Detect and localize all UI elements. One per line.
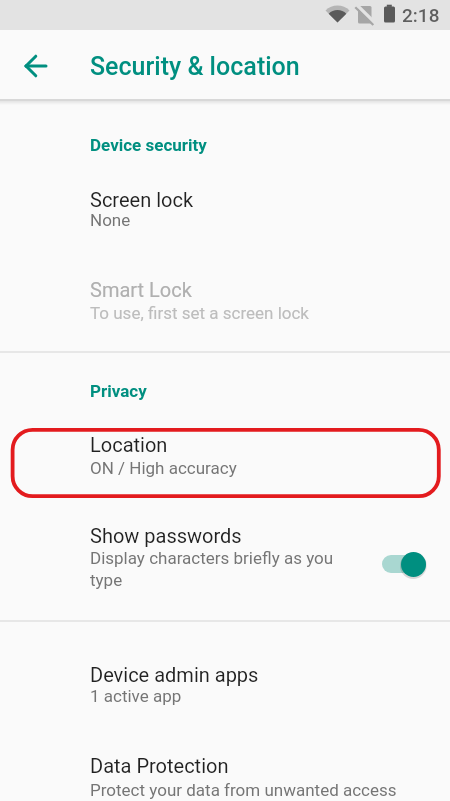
staticText: Protect your data from unwanted access: [90, 780, 397, 800]
button[interactable]: [12, 42, 60, 90]
staticText: To use, first set a screen lock: [90, 303, 309, 323]
button[interactable]: Location: [0, 426, 450, 502]
staticText: Smart Lock: [90, 278, 192, 301]
staticText: Location: [90, 433, 168, 456]
button[interactable]: Device admin apps: [0, 651, 450, 709]
staticText: Show passwords: [90, 524, 242, 547]
staticText: Screen lock: [90, 188, 194, 211]
staticText: 2:18: [402, 4, 440, 26]
button[interactable]: [375, 547, 431, 581]
staticText: None: [90, 210, 131, 230]
staticText: Device admin apps: [90, 663, 259, 686]
staticText: Security & location: [90, 52, 300, 81]
button[interactable]: Show passwords: [0, 514, 450, 610]
staticText: ON / High accuracy: [90, 458, 237, 478]
staticText: Data Protection: [90, 754, 229, 777]
button[interactable]: Screen lock: [0, 176, 450, 234]
button[interactable]: Data Protection: [0, 742, 450, 801]
staticText: Privacy: [90, 381, 147, 401]
staticText: Display characters briefly as you: [90, 548, 334, 568]
staticText: 1 active app: [90, 686, 182, 706]
staticText: type: [90, 570, 123, 590]
staticText: Device security: [90, 135, 207, 155]
button[interactable]: Smart Lock: [0, 266, 450, 328]
